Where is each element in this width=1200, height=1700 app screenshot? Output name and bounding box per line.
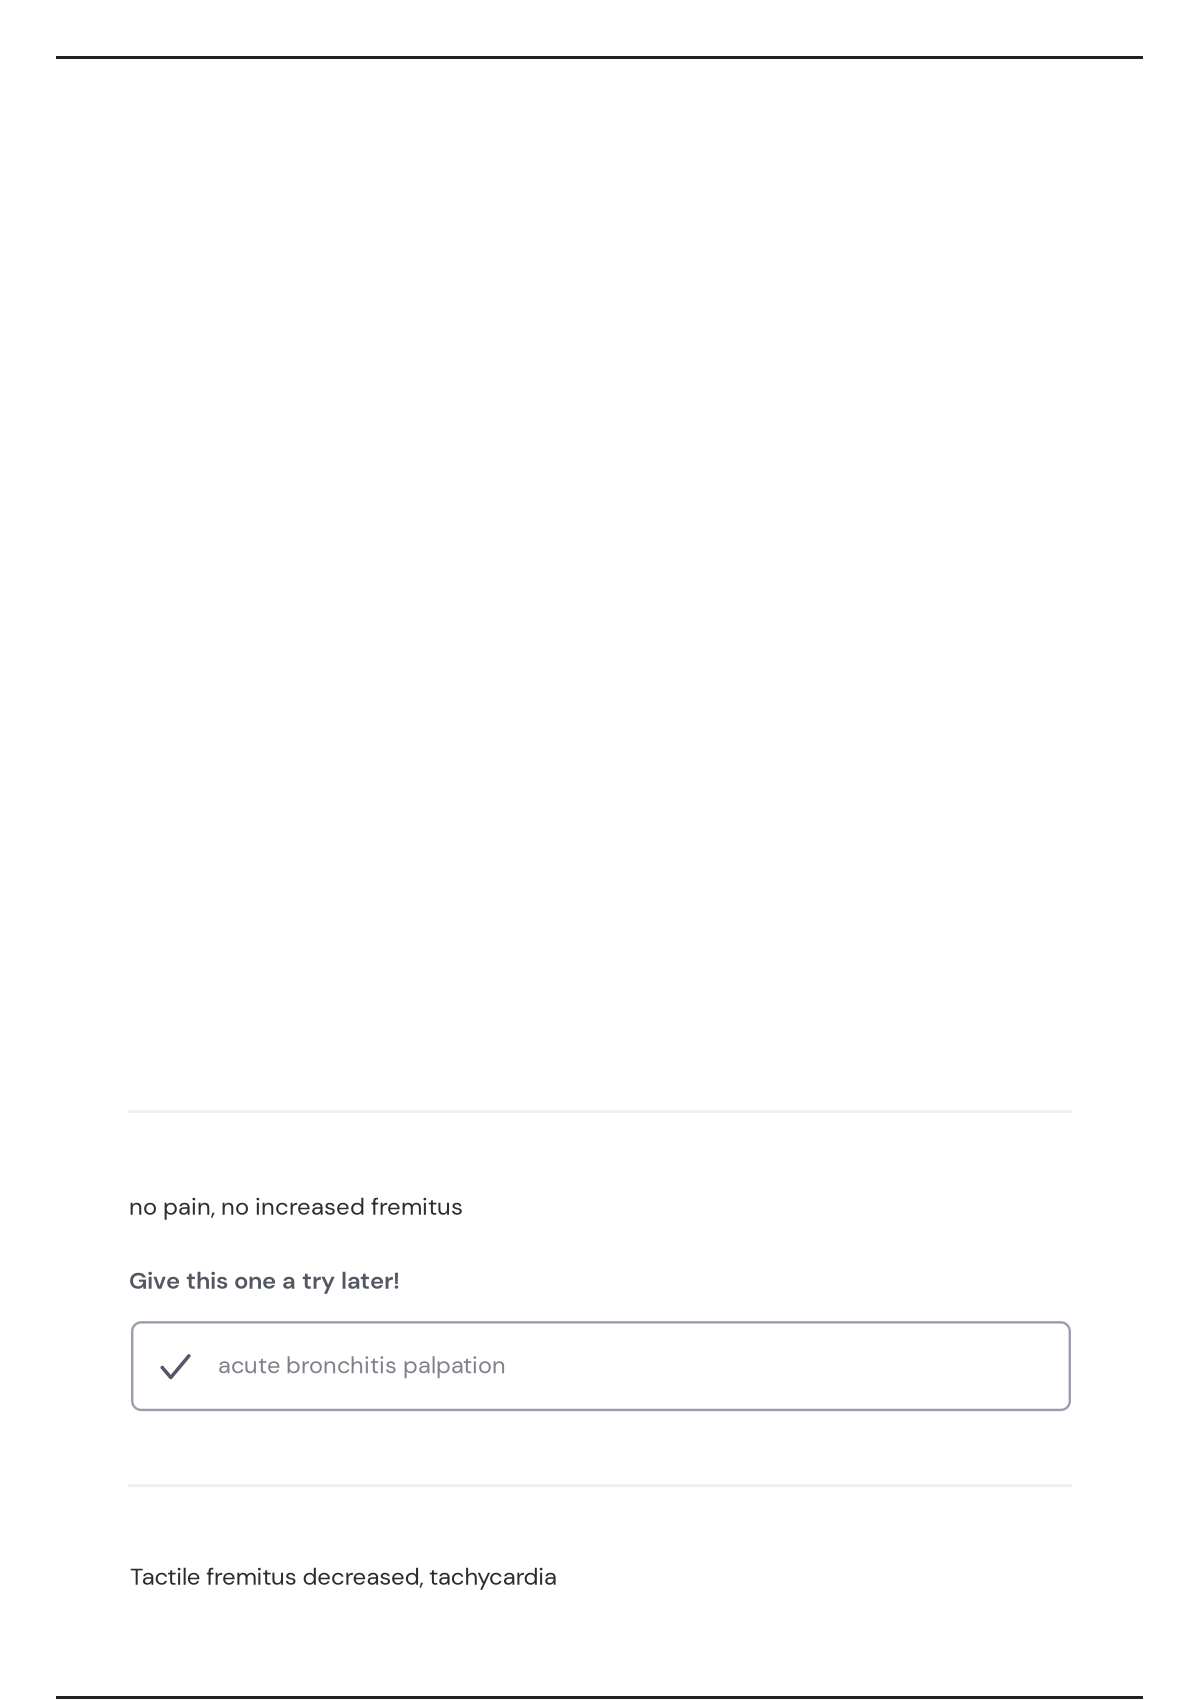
staticText: Tactile fremitus decreased, tachycardia bbox=[130, 1561, 557, 1592]
staticText: acute bronchitis palpation bbox=[218, 1350, 506, 1380]
staticText: Give this one a try later! bbox=[129, 1265, 400, 1296]
staticText: no pain, no increased fremitus bbox=[129, 1191, 463, 1222]
button[interactable]: acute bronchitis palpation bbox=[131, 1321, 1071, 1411]
